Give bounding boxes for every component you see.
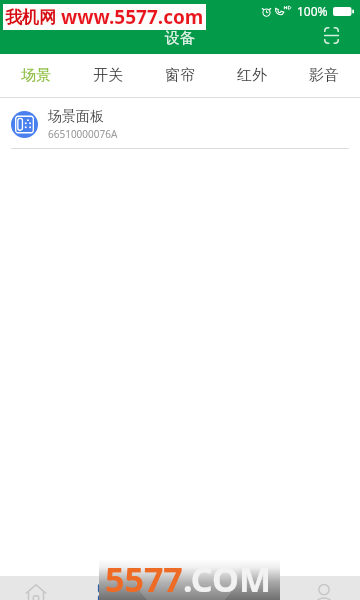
staticText: 影音 — [309, 66, 339, 85]
button[interactable]: 窗帘 — [144, 54, 216, 97]
button[interactable]: 红外 — [216, 54, 288, 97]
button[interactable]: Voice — [144, 576, 216, 600]
staticText: www.5577.com — [61, 4, 204, 30]
button[interactable]: 影音 — [288, 54, 360, 97]
staticText: 66510000076A — [48, 127, 118, 141]
button[interactable]: Scenes — [216, 576, 288, 600]
staticText: 红外 — [237, 66, 267, 85]
button[interactable]: 场景 — [0, 54, 72, 97]
staticText: .COM — [183, 556, 271, 596]
staticText: 5577 — [105, 556, 183, 596]
staticText: 设备 — [165, 29, 195, 48]
button[interactable]: Profile — [288, 576, 360, 600]
staticText: 窗帘 — [165, 66, 195, 85]
staticText: 开关 — [93, 66, 123, 85]
staticText: 100% — [297, 3, 328, 19]
button[interactable]: Devices — [72, 576, 144, 600]
button[interactable]: Scan QR code — [317, 21, 345, 49]
staticText: 我机网 — [5, 7, 56, 28]
button[interactable]: 开关 — [72, 54, 144, 97]
staticText: 场景 — [21, 66, 51, 85]
staticText: 场景面板 — [48, 108, 104, 126]
button[interactable]: 场景面板 — [0, 98, 360, 149]
button[interactable]: Home — [0, 576, 72, 600]
